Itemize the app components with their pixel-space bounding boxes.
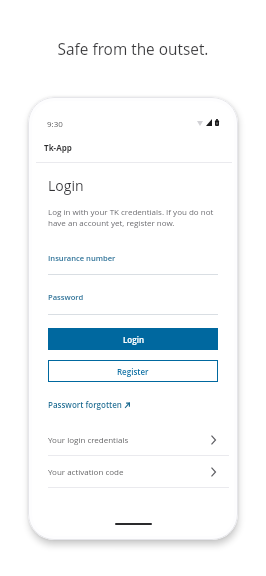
staticText: Your login credentials: [48, 434, 129, 445]
button[interactable]: Login: [48, 328, 218, 350]
staticText: Safe from the outset.: [0, 39, 266, 60]
button[interactable]: Insurance number: [48, 253, 218, 276]
button[interactable]: Passwort forgotten: [48, 399, 130, 410]
button[interactable]: Register: [48, 360, 218, 382]
button[interactable]: Your activation code: [48, 456, 229, 487]
staticText: Log in with your TK credentials. If you …: [48, 206, 223, 229]
staticText: Passwort forgotten: [48, 399, 122, 410]
button[interactable]: Your login credentials: [48, 424, 229, 455]
staticText: Your activation code: [48, 466, 124, 477]
button[interactable]: Password: [48, 292, 218, 316]
staticText: Insurance number: [48, 253, 116, 263]
staticText: Tk-App: [44, 142, 72, 153]
staticText: 9:30: [47, 118, 63, 129]
staticText: Register: [117, 366, 149, 377]
staticText: Password: [48, 292, 84, 302]
staticText: Login: [123, 334, 144, 345]
staticText: Login: [48, 176, 84, 195]
